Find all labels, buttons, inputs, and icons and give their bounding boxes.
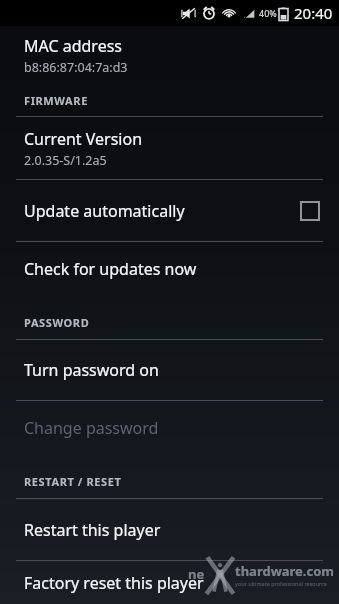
staticText: your ultimate professional resource — [235, 580, 327, 587]
staticText: Restart this player — [24, 519, 161, 541]
staticText: 20:40 — [294, 3, 333, 23]
staticText: ne — [188, 565, 205, 583]
staticText: 40% — [259, 7, 277, 19]
staticText: Factory reset this player — [24, 572, 204, 594]
staticText: Change password — [24, 417, 159, 439]
button[interactable]: Current Version — [0, 117, 339, 179]
button[interactable]: MAC address — [0, 26, 339, 84]
staticText: FIRMWARE — [24, 93, 88, 108]
button[interactable]: Update automatically — [0, 180, 339, 241]
button[interactable]: Turn password on — [0, 340, 339, 400]
staticText: Turn password on — [24, 359, 159, 381]
staticText: Current Version — [24, 128, 143, 150]
button[interactable]: Change password — [0, 401, 339, 455]
staticText: RESTART / RESET — [24, 474, 122, 489]
staticText: PASSWORD — [24, 315, 90, 330]
button[interactable]: Restart this player — [0, 499, 339, 560]
staticText: thardware.com — [235, 562, 335, 580]
staticText: Update automatically — [24, 200, 185, 222]
button[interactable]: Check for updates now — [0, 242, 339, 296]
staticText: 2.0.35-S/1.2a5 — [24, 152, 107, 169]
staticText: Check for updates now — [24, 258, 197, 280]
button[interactable]: Factory reset this player — [0, 561, 339, 604]
staticText: b8:86:87:04:7a:d3 — [24, 59, 128, 76]
button[interactable]: Update automatically checkbox — [298, 199, 322, 223]
staticText: MAC address — [24, 35, 122, 57]
